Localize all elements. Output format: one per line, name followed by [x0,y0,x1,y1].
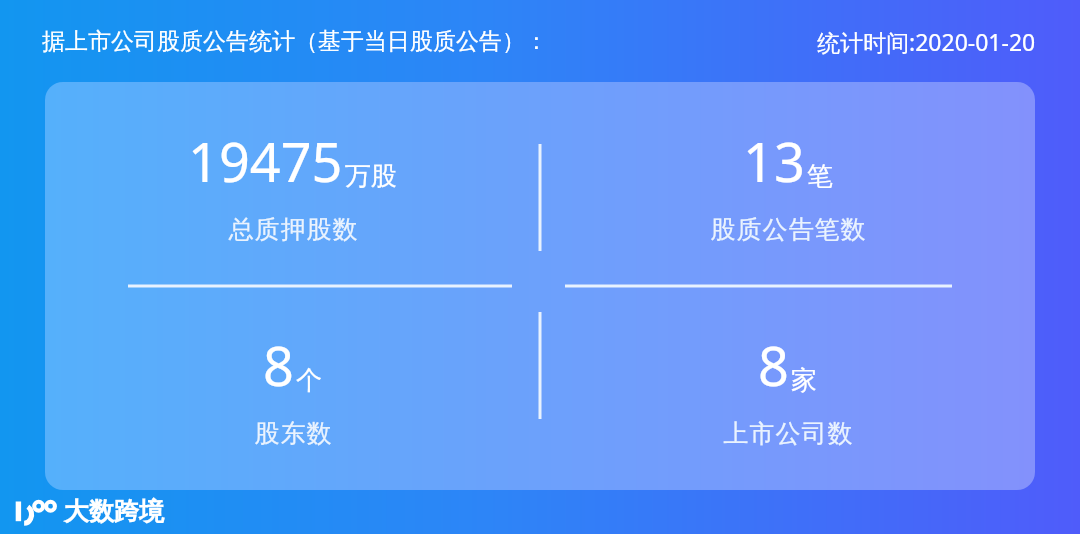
staticText: 总质押股数 [228,214,358,245]
staticText: 家 [791,364,817,397]
staticText: 13 [743,124,805,198]
staticText: 上市公司数 [723,418,853,449]
button[interactable]: 大数跨境 logo [14,494,164,528]
staticText: 据上市公司股质公告统计（基于当日股质公告）： [42,27,548,56]
staticText: 统计时间:2020-01-20 [817,26,1036,57]
button[interactable]: 8 [540,286,1035,490]
button[interactable]: 13 [540,82,1035,286]
staticText: 19475 [188,124,343,198]
staticText: 8 [263,328,294,402]
staticText: 大数跨境 [64,496,164,527]
staticText: 股质公告笔数 [710,214,866,245]
button[interactable]: 8 [45,286,540,490]
staticText: 笔 [807,160,833,193]
staticText: 万股 [345,160,397,193]
staticText: 8 [758,328,789,402]
button[interactable]: 19475 [45,82,540,286]
staticText: 个 [296,364,322,397]
staticText: 股东数 [254,418,332,449]
